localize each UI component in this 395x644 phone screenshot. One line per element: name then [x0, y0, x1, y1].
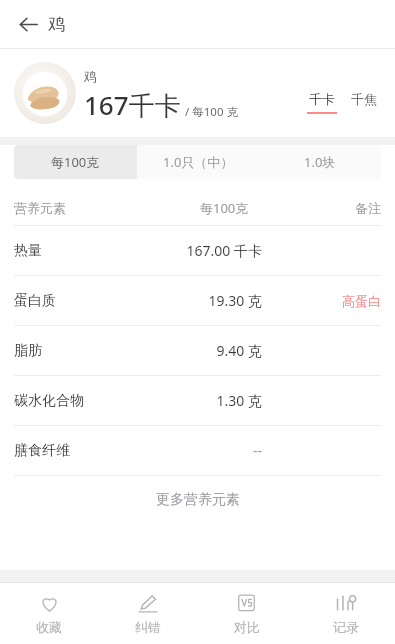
staticText: 备注: [355, 200, 381, 216]
button[interactable]: 脂肪: [0, 326, 395, 375]
staticText: 高蛋白: [342, 293, 381, 309]
staticText: 167.00 千卡: [114, 241, 262, 260]
button[interactable]: 碳水化合物: [0, 376, 395, 425]
button[interactable]: 纠错: [98, 583, 197, 644]
staticText: 167千卡: [84, 87, 181, 123]
staticText: 脂肪: [14, 342, 42, 360]
staticText: 热量: [14, 242, 42, 260]
staticText: 千卡: [309, 91, 335, 107]
staticText: 鸡: [84, 68, 97, 84]
staticText: 19.30 克: [114, 291, 262, 310]
staticText: 蛋白质: [14, 292, 56, 310]
staticText: 鸡: [48, 14, 65, 35]
staticText: 1.30 克: [114, 391, 262, 410]
staticText: 营养元素: [14, 200, 66, 216]
button[interactable]: 膳食纤维: [0, 426, 395, 475]
staticText: 9.40 克: [114, 341, 262, 360]
staticText: / 每100 克: [185, 104, 238, 120]
button[interactable]: 热量: [0, 226, 395, 275]
button[interactable]: 每100克: [14, 145, 137, 179]
button[interactable]: Back: [8, 4, 48, 44]
staticText: 1.0只（中）: [163, 153, 234, 171]
staticText: 每100克: [200, 199, 249, 217]
staticText: 纠错: [135, 619, 161, 635]
staticText: 碳水化合物: [14, 392, 84, 410]
staticText: --: [114, 441, 262, 460]
button[interactable]: 蛋白质: [0, 276, 395, 325]
button[interactable]: 1.0块: [259, 145, 381, 179]
staticText: 每100克: [51, 153, 100, 171]
button[interactable]: 更多营养元素: [0, 476, 395, 524]
staticText: 对比: [234, 619, 260, 635]
button[interactable]: 记录: [296, 583, 395, 644]
button[interactable]: 千卡: [305, 91, 339, 114]
staticText: 膳食纤维: [14, 442, 70, 460]
staticText: 千焦: [351, 91, 377, 107]
staticText: 更多营养元素: [156, 491, 240, 509]
button[interactable]: 千焦: [347, 91, 381, 114]
button[interactable]: 1.0只（中）: [137, 145, 259, 179]
staticText: 1.0块: [304, 153, 336, 171]
button[interactable]: 对比: [197, 583, 296, 644]
button[interactable]: 收藏: [0, 583, 98, 644]
staticText: 记录: [333, 619, 359, 635]
staticText: 收藏: [36, 619, 62, 635]
